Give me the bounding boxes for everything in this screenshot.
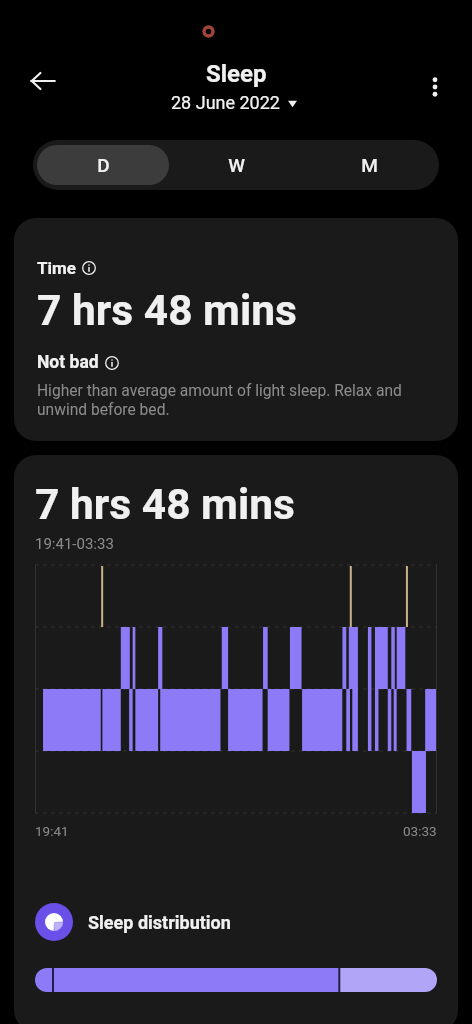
staticText: Time (37, 258, 76, 278)
button[interactable]: Back (19, 57, 67, 105)
button[interactable]: Sleep distribution (35, 903, 437, 941)
staticText: 19:41-03:33 (35, 535, 114, 553)
button[interactable]: More options (411, 63, 459, 111)
staticText: D (97, 154, 110, 176)
button[interactable]: 28 June 2022 (167, 90, 301, 115)
staticText: Higher than average amount of light slee… (37, 382, 435, 419)
staticText: Sleep distribution (88, 912, 231, 933)
button[interactable]: D (37, 145, 169, 185)
staticText: 19:41 (35, 823, 69, 839)
staticText: W (228, 154, 245, 176)
staticText: 28 June 2022 (171, 92, 280, 113)
staticText: 7 hrs 48 mins (35, 480, 295, 530)
button[interactable]: W (171, 145, 302, 185)
staticText: M (361, 154, 378, 176)
button[interactable]: M (304, 145, 435, 185)
staticText: Sleep (206, 60, 267, 88)
staticText: 03:33 (403, 823, 437, 839)
staticText: Not bad (37, 352, 99, 373)
staticText: 7 hrs 48 mins (37, 286, 297, 336)
